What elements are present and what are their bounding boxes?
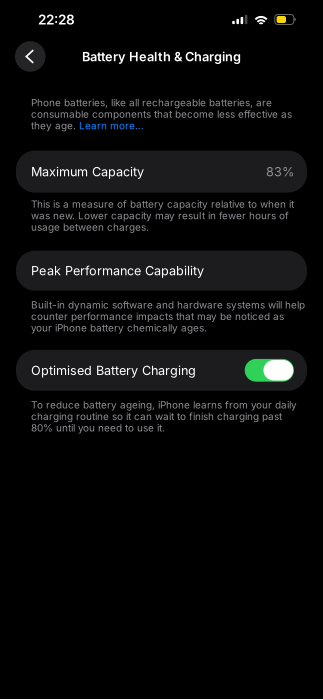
staticText: 22:28 <box>38 11 75 28</box>
staticText: your iPhone battery chemically ages. <box>31 322 207 334</box>
staticText: Optimised Battery Charging <box>31 363 196 378</box>
staticText: Learn more… <box>79 119 144 132</box>
button[interactable]: Peak Performance Capability <box>0 251 323 291</box>
staticText: Battery Health & Charging <box>82 49 241 64</box>
staticText: consumable components that become less e… <box>31 108 292 120</box>
staticText: counter performance impacts that may be … <box>31 310 284 322</box>
staticText: To reduce battery ageing, iPhone learns … <box>31 399 297 411</box>
staticText: usage between charges. <box>31 221 149 233</box>
staticText: charging routine so it can wait to finis… <box>31 410 282 422</box>
staticText: Peak Performance Capability <box>31 263 204 278</box>
staticText: 80% until you need to use it. <box>31 422 165 434</box>
staticText: Phone batteries, like all rechargeable b… <box>31 96 272 109</box>
staticText: This is a measure of battery capacity re… <box>31 198 294 210</box>
staticText: was new. Lower capacity may result in fe… <box>31 210 289 222</box>
staticText: they age. <box>31 119 79 132</box>
button[interactable]: Back <box>15 41 45 72</box>
staticText: Maximum Capacity <box>31 164 144 179</box>
staticText: Built-in dynamic software and hardware s… <box>31 299 305 311</box>
button[interactable]: Learn more… <box>79 119 144 132</box>
button[interactable]: Optimised Battery Charging <box>245 359 294 382</box>
staticText: 83% <box>266 164 294 179</box>
